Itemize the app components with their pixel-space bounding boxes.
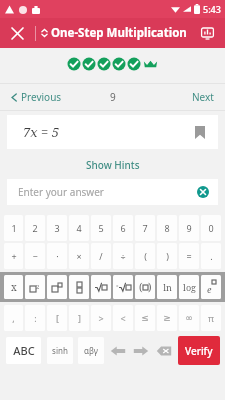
staticText: <	[120, 312, 126, 324]
button[interactable]: Enter your answer	[7, 179, 218, 205]
staticText: sinh	[52, 345, 68, 356]
button[interactable]: 5	[91, 215, 111, 241]
button[interactable]: ≤	[135, 305, 155, 331]
staticText: −	[32, 250, 38, 262]
staticText: 9	[186, 222, 192, 234]
staticText: 5:43	[203, 3, 221, 15]
button[interactable]: x	[4, 275, 23, 299]
staticText: 7𝑥 = 5	[23, 123, 59, 141]
button[interactable]: Next	[190, 87, 216, 107]
staticText: ≤	[141, 313, 149, 323]
button[interactable]: ÷	[113, 243, 133, 269]
button[interactable]: Clear	[197, 186, 209, 198]
staticText: 6	[120, 222, 126, 234]
staticText: +	[11, 250, 17, 262]
button[interactable]: 9	[179, 215, 199, 241]
button[interactable]: 2	[25, 275, 45, 299]
button[interactable]: 2	[25, 215, 45, 241]
staticText: One-Step Multiplication	[51, 25, 187, 41]
staticText: .	[210, 250, 213, 262]
button[interactable]: >	[91, 305, 111, 331]
staticText: )	[166, 250, 169, 262]
staticText: 8	[164, 222, 170, 234]
button[interactable]: +	[4, 243, 23, 269]
button[interactable]: Previous	[9, 87, 64, 107]
button[interactable]: ×	[69, 243, 89, 269]
staticText: 0	[208, 222, 214, 234]
staticText: 3	[54, 222, 60, 234]
staticText: ,	[12, 312, 15, 324]
staticText: )	[148, 280, 152, 294]
staticText: ABC	[13, 343, 35, 358]
button[interactable]: sinh	[47, 337, 73, 364]
staticText: /	[99, 250, 103, 262]
button[interactable]: e	[201, 275, 221, 299]
staticText: Enter your answer	[18, 185, 104, 199]
button[interactable]: 8	[157, 215, 177, 241]
staticText: log	[183, 281, 196, 293]
staticText: ·	[56, 250, 59, 262]
staticText: Next	[192, 90, 214, 104]
button[interactable]: <	[113, 305, 133, 331]
button[interactable]: Show Hints	[80, 156, 146, 174]
button[interactable]: ∞	[179, 305, 199, 331]
staticText: ln	[163, 281, 172, 293]
button[interactable]: ]	[69, 305, 89, 331]
button[interactable]: 0	[201, 215, 221, 241]
button[interactable]: 3	[47, 215, 67, 241]
staticText: ]	[78, 312, 81, 324]
button[interactable]: Backspace	[153, 338, 175, 363]
staticText: (	[144, 250, 147, 262]
button[interactable]: ABC	[6, 337, 41, 364]
staticText: [	[56, 312, 59, 324]
button[interactable]: .	[201, 243, 221, 269]
button[interactable]: /	[91, 243, 111, 269]
staticText: Verify	[185, 344, 213, 358]
staticText: 2	[32, 222, 38, 234]
button[interactable]: αβγ	[78, 337, 104, 364]
staticText: =	[186, 250, 192, 262]
staticText: :	[34, 312, 37, 324]
staticText: °	[116, 283, 119, 291]
button[interactable]: Close	[3, 19, 31, 47]
staticText: >	[98, 312, 104, 324]
staticText: αβγ	[84, 345, 98, 356]
button[interactable]: Move right	[130, 338, 152, 363]
button[interactable]	[47, 275, 67, 299]
button[interactable]: Move left	[107, 338, 129, 363]
button[interactable]: Bookmark	[195, 126, 205, 139]
button[interactable]: 7	[135, 215, 155, 241]
staticText: 1	[11, 222, 17, 234]
button[interactable]: log	[179, 275, 199, 299]
staticText: π	[208, 312, 214, 324]
button[interactable]: Verify	[178, 336, 220, 365]
button[interactable]: 4	[69, 215, 89, 241]
button[interactable]: 6	[113, 215, 133, 241]
button[interactable]: ,	[4, 305, 23, 331]
staticText: (	[139, 280, 143, 294]
staticText: 9	[110, 90, 116, 104]
button[interactable]: Statistics	[194, 20, 220, 46]
button[interactable]	[69, 275, 89, 299]
button[interactable]: ln	[157, 275, 177, 299]
staticText: ÷	[120, 250, 126, 262]
button[interactable]: ≥	[157, 305, 177, 331]
staticText: e	[207, 283, 212, 295]
button[interactable]: =	[179, 243, 199, 269]
button[interactable]	[91, 275, 111, 299]
button[interactable]: ·	[47, 243, 67, 269]
staticText: ≥	[163, 313, 171, 323]
button[interactable]: −	[25, 243, 45, 269]
button[interactable]: π	[201, 305, 221, 331]
staticText: Previous	[21, 90, 62, 104]
button[interactable]: (	[135, 243, 155, 269]
button[interactable]: )	[157, 243, 177, 269]
button[interactable]: (	[135, 275, 155, 299]
staticText: 2	[36, 283, 40, 291]
button[interactable]: °	[113, 275, 133, 299]
button[interactable]: 1	[4, 215, 23, 241]
button[interactable]: :	[25, 305, 45, 331]
button[interactable]: [	[47, 305, 67, 331]
button[interactable]: 7𝑥 = 5	[7, 115, 218, 149]
staticText: 7	[142, 222, 148, 234]
